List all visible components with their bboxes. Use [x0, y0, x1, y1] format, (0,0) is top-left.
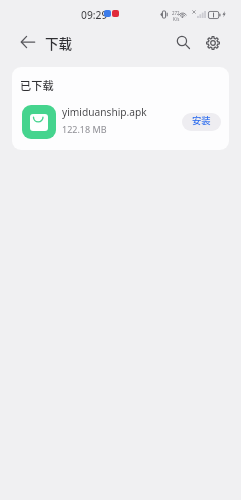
staticText: K/s: [173, 16, 180, 22]
staticText: 安装: [192, 113, 211, 126]
staticText: yimiduanship.apk: [62, 105, 147, 119]
button[interactable]: Settings: [199, 29, 227, 57]
button[interactable]: Search: [169, 28, 197, 56]
staticText: 122.18 MB: [62, 123, 107, 135]
button[interactable]: yimiduanship.apk: [12, 97, 229, 143]
staticText: 272: [172, 10, 180, 16]
button[interactable]: Back: [14, 28, 42, 56]
staticText: 下载: [45, 33, 73, 53]
staticText: 09:29: [81, 8, 108, 22]
staticText: 已下载: [20, 77, 54, 93]
button[interactable]: 安装: [182, 113, 221, 131]
